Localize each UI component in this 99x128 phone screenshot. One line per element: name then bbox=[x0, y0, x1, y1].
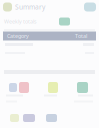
button[interactable]: Pink category bbox=[19, 82, 29, 93]
staticText: Weekly totals bbox=[4, 18, 37, 25]
button[interactable]: App bbox=[3, 2, 12, 11]
button[interactable]: Blue category bbox=[9, 83, 17, 92]
button[interactable]: Filter bbox=[84, 2, 96, 11]
button[interactable]: Lime tag bbox=[10, 114, 19, 122]
button[interactable]: Blue tag bbox=[46, 114, 57, 122]
staticText: Summary bbox=[15, 3, 45, 11]
staticText: Category bbox=[7, 32, 29, 40]
button[interactable]: Lavender tag bbox=[23, 114, 35, 122]
button[interactable]: Lime category bbox=[48, 82, 58, 93]
staticText: Total bbox=[75, 32, 87, 40]
button[interactable]: Teal category bbox=[77, 82, 88, 93]
button[interactable]: Status bbox=[59, 17, 70, 25]
